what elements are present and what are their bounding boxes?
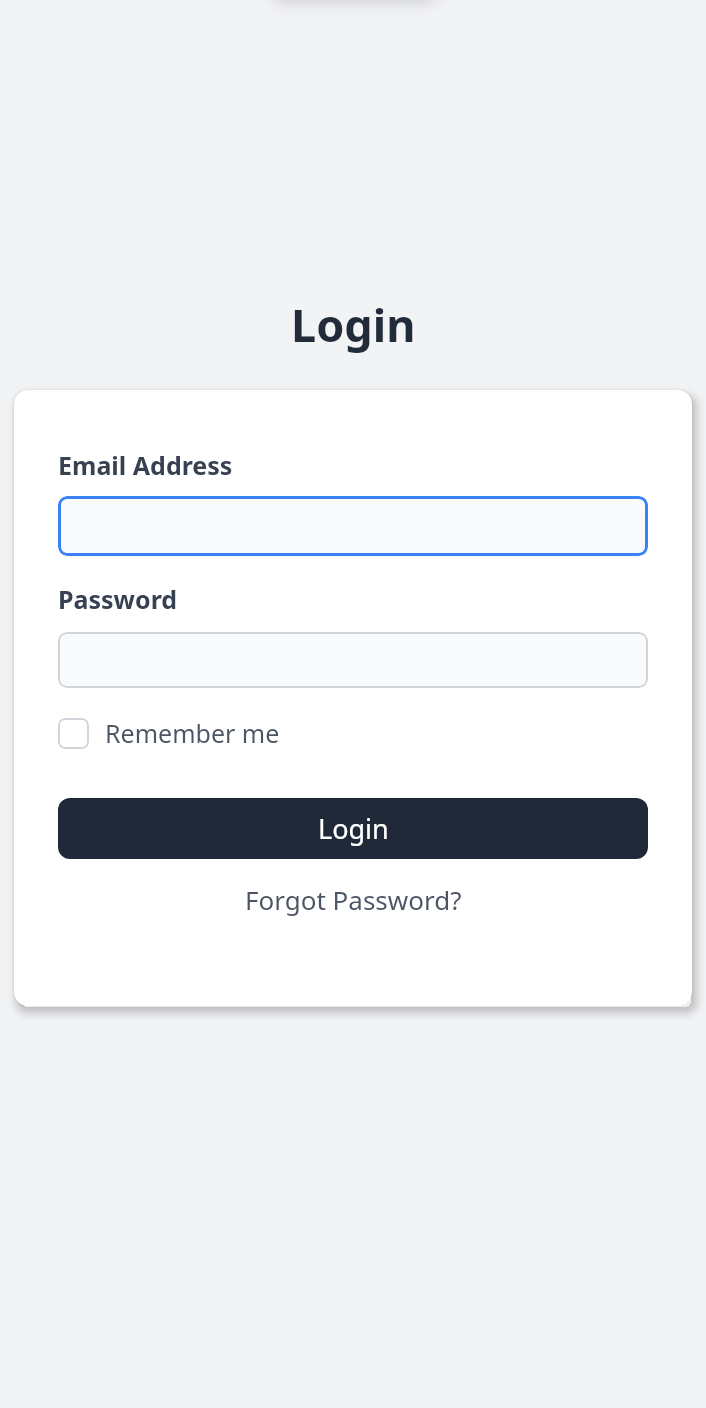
- staticText: Forgot Password?: [245, 882, 462, 917]
- staticText: Email Address: [58, 448, 233, 482]
- staticText: Password: [58, 582, 178, 616]
- button[interactable]: [58, 496, 648, 556]
- button[interactable]: Forgot Password?: [245, 882, 462, 917]
- button[interactable]: Login: [58, 798, 648, 859]
- button[interactable]: Remember me: [58, 716, 280, 750]
- staticText: Remember me: [105, 716, 280, 750]
- staticText: Login: [318, 810, 389, 847]
- staticText: Login: [291, 294, 416, 355]
- button[interactable]: [58, 632, 648, 688]
